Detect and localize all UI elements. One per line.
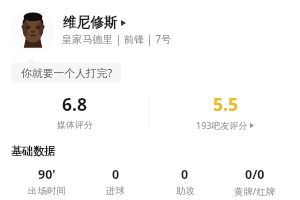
- staticText: 进球: [106, 185, 125, 197]
- staticText: 193吧友评分: [196, 119, 248, 131]
- staticText: 0/0: [245, 166, 265, 183]
- button[interactable]: Player avatar: [11, 9, 55, 53]
- staticText: 皇家马德里 | 前锋 | 7号: [62, 32, 172, 46]
- button[interactable]: 90': [12, 166, 81, 197]
- staticText: 助攻: [176, 185, 195, 197]
- staticText: 0: [112, 166, 120, 183]
- staticText: 基础数据: [11, 144, 55, 158]
- staticText: 黄牌/红牌: [234, 185, 276, 198]
- staticText: 媒体评分: [57, 119, 93, 130]
- button[interactable]: 你就要一个人打完?: [11, 63, 121, 82]
- button[interactable]: 维尼修斯: [63, 14, 126, 31]
- staticText: 维尼修斯: [63, 14, 118, 31]
- staticText: 出场时间: [28, 185, 66, 197]
- staticText: 0: [181, 166, 189, 183]
- staticText: 5.5: [213, 92, 238, 116]
- staticText: 你就要一个人打完?: [21, 65, 113, 80]
- button[interactable]: 0: [150, 166, 220, 197]
- button[interactable]: 5.5: [150, 92, 300, 131]
- button[interactable]: 0: [81, 166, 150, 197]
- staticText: 90': [38, 166, 56, 183]
- button[interactable]: 0/0: [220, 166, 290, 198]
- button[interactable]: 6.8: [0, 92, 149, 130]
- staticText: 6.8: [62, 92, 87, 116]
